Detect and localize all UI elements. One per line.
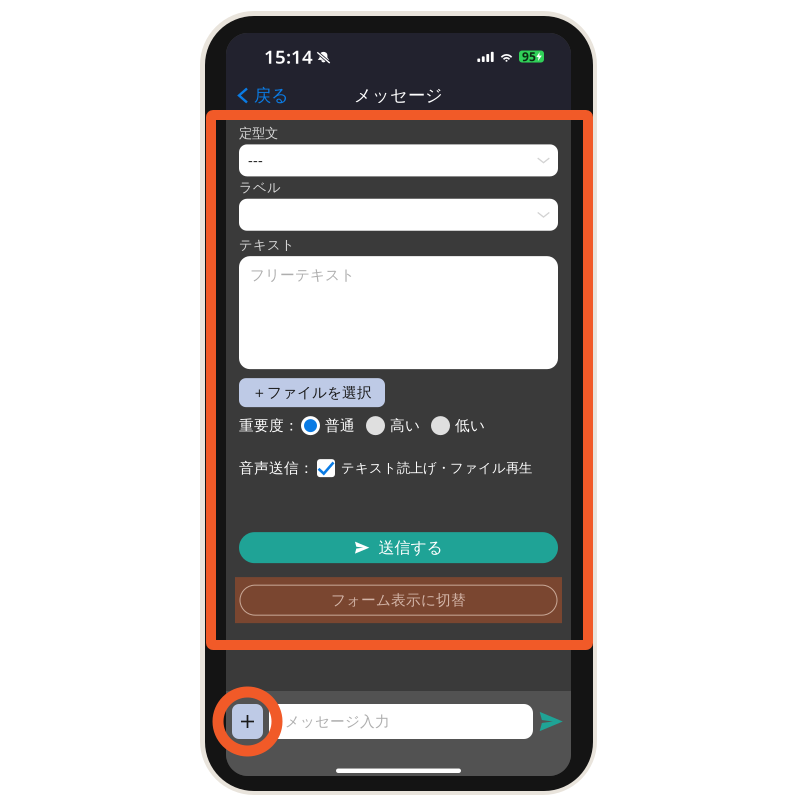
button[interactable]: Add attachment bbox=[232, 704, 263, 739]
staticText: 定型文 bbox=[239, 125, 278, 141]
staticText: 音声送信： bbox=[239, 459, 314, 477]
button[interactable]: Send bbox=[539, 709, 563, 733]
staticText: 低い bbox=[455, 417, 485, 435]
staticText: テキスト読上げ・ファイル再生 bbox=[341, 460, 532, 476]
staticText: 95 bbox=[522, 48, 536, 64]
staticText: 15:14 bbox=[264, 44, 313, 69]
staticText: テキスト bbox=[239, 237, 295, 253]
button[interactable]: フリーテキスト bbox=[239, 256, 558, 369]
button[interactable] bbox=[239, 199, 558, 231]
button[interactable]: 普通 bbox=[301, 416, 355, 435]
button[interactable]: 低い bbox=[431, 416, 485, 435]
staticText: 重要度： bbox=[239, 417, 299, 435]
button[interactable]: ＋ファイルを選択 bbox=[239, 378, 385, 407]
staticText: メッセージ bbox=[354, 85, 443, 106]
button[interactable]: 戻る bbox=[226, 81, 300, 110]
staticText: 普通 bbox=[325, 417, 355, 435]
staticText: メッセージ入力 bbox=[285, 712, 390, 730]
button[interactable]: --- bbox=[239, 144, 558, 176]
staticText: ラベル bbox=[239, 179, 281, 196]
staticText: フォーム表示に切替 bbox=[331, 591, 466, 609]
staticText: フリーテキスト bbox=[250, 266, 355, 284]
button[interactable]: テキスト読上げ・ファイル再生 bbox=[317, 459, 532, 477]
button[interactable]: 送信する bbox=[239, 532, 558, 563]
staticText: 戻る bbox=[254, 85, 289, 106]
staticText: --- bbox=[248, 151, 263, 170]
button[interactable]: フォーム表示に切替 bbox=[235, 577, 562, 623]
staticText: 高い bbox=[390, 417, 420, 435]
button[interactable]: 高い bbox=[366, 416, 420, 435]
staticText: 送信する bbox=[378, 538, 442, 557]
staticText: ＋ファイルを選択 bbox=[252, 384, 372, 402]
